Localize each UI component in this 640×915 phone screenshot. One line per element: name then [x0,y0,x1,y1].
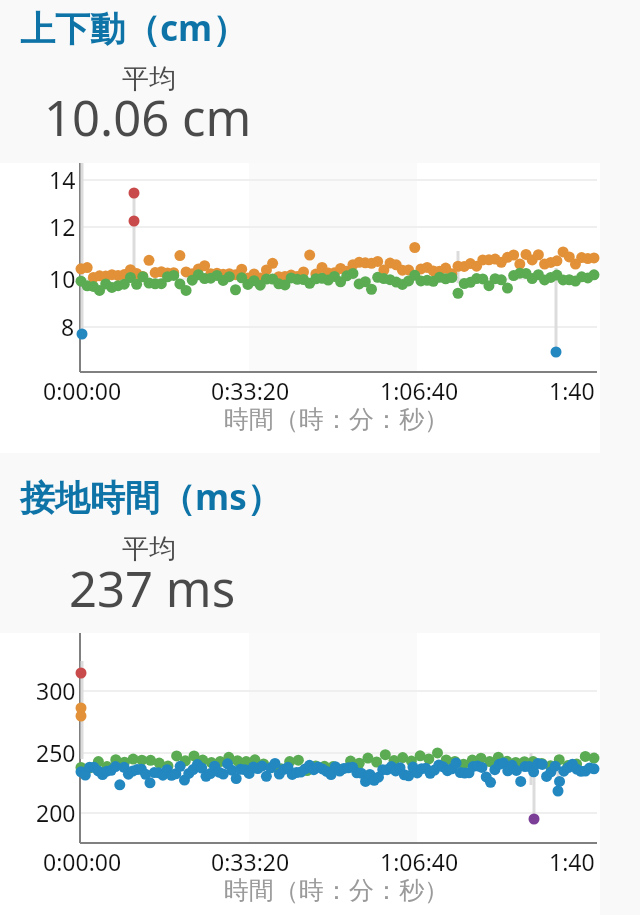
staticText: 0:33:20 [211,846,290,877]
staticText: 10.06 cm [44,84,252,151]
staticText: 平均 [122,62,176,96]
other: Ground contact time scatter chart [0,633,640,915]
staticText: 12 [49,211,76,242]
staticText: 1:40 [549,375,595,406]
button[interactable]: 上下動（cm） [0,0,640,163]
staticText: 8 [61,311,75,342]
staticText: 14 [49,164,76,195]
staticText: 10 [49,263,76,294]
staticText: 時間（時：分：秒） [224,875,449,906]
button[interactable]: Ground contact time scatter chart [0,633,640,915]
staticText: 1:40 [549,846,595,877]
staticText: 1:06:40 [380,846,459,877]
staticText: 1:06:40 [380,375,459,406]
staticText: 平均 [122,532,176,566]
staticText: 0:33:20 [211,375,290,406]
staticText: 時間（時：分：秒） [224,404,449,435]
staticText: 200 [36,797,76,828]
staticText: 237 ms [69,555,236,622]
button[interactable]: Vertical oscillation scatter chart [0,163,640,453]
staticText: 300 [36,675,76,706]
staticText: 0:00:00 [43,846,122,877]
button[interactable]: 接地時間（ms） [0,453,640,633]
staticText: 上下動（cm） [20,4,248,52]
staticText: 250 [36,737,76,768]
other: Vertical oscillation scatter chart [0,163,640,453]
staticText: 0:00:00 [43,375,122,406]
staticText: 接地時間（ms） [20,473,282,521]
